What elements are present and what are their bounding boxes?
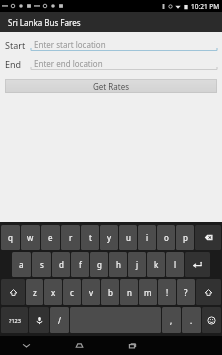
staticText: p bbox=[183, 232, 188, 243]
button[interactable]: . bbox=[182, 307, 201, 333]
staticText: Enter end location bbox=[34, 58, 103, 69]
staticText: h bbox=[116, 259, 121, 270]
button[interactable]: y bbox=[100, 225, 118, 250]
button[interactable]: h bbox=[109, 252, 127, 277]
staticText: u bbox=[126, 232, 131, 243]
button[interactable]: d bbox=[52, 252, 70, 277]
staticText: s bbox=[40, 259, 44, 270]
staticText: l bbox=[174, 259, 177, 270]
button[interactable]: c bbox=[63, 279, 81, 305]
button[interactable]: l bbox=[166, 252, 184, 277]
button[interactable]: Home bbox=[53, 336, 106, 355]
staticText: d bbox=[59, 259, 64, 270]
staticText: b bbox=[108, 287, 113, 298]
staticText: ! bbox=[166, 287, 169, 298]
button[interactable]: w bbox=[21, 225, 40, 250]
button[interactable]: t bbox=[81, 225, 99, 250]
button[interactable]: Get Rates bbox=[5, 79, 217, 93]
button[interactable]: Back bbox=[0, 336, 53, 355]
staticText: , bbox=[170, 315, 173, 326]
button[interactable]: Voice input bbox=[29, 307, 49, 333]
button[interactable]: Shift bbox=[1, 279, 25, 305]
staticText: Sri Lanka Bus Fares bbox=[8, 17, 81, 28]
staticText: Enter start location bbox=[34, 39, 106, 50]
button[interactable]: ?123 bbox=[1, 307, 28, 333]
staticText: ?123 bbox=[9, 317, 21, 324]
staticText: c bbox=[70, 287, 74, 298]
staticText: q bbox=[8, 232, 13, 243]
button[interactable]: n bbox=[120, 279, 138, 305]
button[interactable]: b bbox=[101, 279, 119, 305]
button[interactable]: ? bbox=[177, 279, 195, 305]
staticText: g bbox=[97, 259, 102, 270]
staticText: e bbox=[48, 232, 53, 243]
staticText: n bbox=[127, 287, 132, 298]
button[interactable]: Enter end location bbox=[31, 56, 217, 71]
staticText: f bbox=[79, 259, 82, 270]
staticText: Get Rates bbox=[93, 81, 129, 92]
button[interactable]: Recent apps bbox=[106, 336, 159, 355]
staticText: ? bbox=[184, 287, 188, 298]
button[interactable]: o bbox=[157, 225, 175, 250]
staticText: k bbox=[154, 259, 159, 270]
staticText: v bbox=[89, 287, 94, 298]
staticText: . bbox=[190, 315, 193, 326]
button[interactable]: ! bbox=[158, 279, 176, 305]
staticText: r bbox=[69, 232, 73, 243]
button[interactable]: s bbox=[32, 252, 51, 277]
button[interactable]: u bbox=[119, 225, 137, 250]
staticText: j bbox=[136, 259, 139, 270]
staticText: w bbox=[27, 232, 34, 243]
button[interactable]: e bbox=[41, 225, 60, 250]
button[interactable]: p bbox=[176, 225, 194, 250]
button[interactable]: m bbox=[139, 279, 157, 305]
button[interactable]: a bbox=[12, 252, 31, 277]
button[interactable]: i bbox=[138, 225, 156, 250]
button[interactable]: g bbox=[90, 252, 108, 277]
button[interactable]: , bbox=[162, 307, 181, 333]
button[interactable]: q bbox=[1, 225, 20, 250]
button[interactable]: f bbox=[71, 252, 89, 277]
staticText: i bbox=[146, 232, 149, 243]
button[interactable]: / bbox=[50, 307, 69, 333]
staticText: y bbox=[107, 232, 112, 243]
staticText: t bbox=[89, 232, 92, 243]
staticText: a bbox=[19, 259, 24, 270]
button[interactable]: r bbox=[61, 225, 80, 250]
button[interactable]: Enter start location bbox=[31, 37, 217, 52]
staticText: / bbox=[58, 315, 61, 326]
staticText: Start bbox=[5, 39, 31, 51]
button[interactable]: Emoji bbox=[202, 307, 221, 333]
button[interactable]: Backspace bbox=[195, 225, 221, 250]
staticText: m bbox=[144, 287, 152, 298]
button[interactable]: j bbox=[128, 252, 146, 277]
button[interactable]: v bbox=[82, 279, 100, 305]
staticText: z bbox=[33, 287, 37, 298]
button[interactable]: x bbox=[44, 279, 62, 305]
staticText: o bbox=[164, 232, 169, 243]
button[interactable]: Enter bbox=[185, 252, 210, 277]
button[interactable]: z bbox=[26, 279, 43, 305]
button[interactable]: Shift bbox=[196, 279, 221, 305]
staticText: 10:21 PM bbox=[191, 2, 220, 11]
staticText: End bbox=[5, 58, 31, 70]
button[interactable]: k bbox=[147, 252, 165, 277]
staticText: x bbox=[51, 287, 56, 298]
